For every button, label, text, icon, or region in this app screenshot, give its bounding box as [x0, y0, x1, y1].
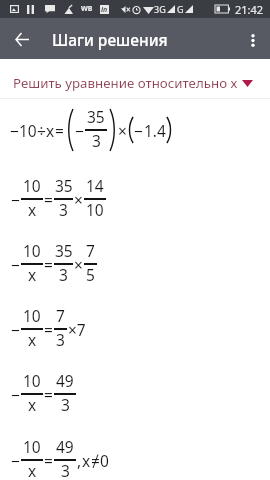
staticText: 7 [86, 240, 95, 260]
staticText: x [28, 394, 37, 414]
staticText: x [28, 264, 37, 284]
staticText: − [11, 254, 20, 275]
staticText: 10 [23, 175, 41, 195]
staticText: ÷ [37, 120, 46, 141]
staticText: = [44, 189, 53, 210]
button[interactable]: More options [236, 18, 270, 59]
staticText: − [11, 189, 20, 210]
staticText: 10 [86, 199, 104, 219]
staticText: x [28, 460, 37, 480]
staticText: 35 [87, 106, 105, 126]
staticText: 10 [19, 120, 37, 141]
staticText: − [75, 120, 84, 141]
staticText: 10 [23, 240, 41, 260]
staticText: = [44, 254, 53, 275]
staticText: G [177, 3, 184, 15]
staticText: 7 [56, 305, 65, 325]
staticText: × [74, 254, 83, 275]
button[interactable]: Решить уравнение относительно х [0, 59, 270, 98]
staticText: ≠ [91, 450, 100, 471]
staticText: x [46, 120, 55, 141]
staticText: x [28, 199, 37, 219]
staticText: x [82, 450, 91, 471]
staticText: 14 [86, 175, 104, 195]
staticText: = [55, 120, 64, 141]
staticText: − [134, 120, 143, 141]
staticText: 35 [55, 240, 73, 260]
staticText: , [77, 450, 82, 471]
staticText: 3 [61, 460, 70, 480]
staticText: 10 [23, 436, 41, 456]
staticText: − [10, 120, 19, 141]
staticText: × [74, 189, 83, 210]
staticText: 0 [100, 450, 109, 471]
staticText: 1.4 [144, 120, 166, 141]
staticText: 49 [56, 436, 74, 456]
staticText: = [44, 450, 53, 471]
staticText: Решить уравнение относительно х [13, 74, 238, 92]
staticText: × [118, 120, 127, 141]
staticText: WB [81, 4, 93, 14]
staticText: 10 [23, 305, 41, 325]
staticText: − [11, 319, 20, 340]
staticText: = [44, 384, 53, 405]
staticText: in [101, 5, 108, 14]
staticText: 35 [55, 175, 73, 195]
staticText: x [28, 329, 37, 349]
staticText: Шаги решения [52, 29, 168, 50]
staticText: 3 [59, 199, 68, 219]
staticText: 3 [59, 264, 68, 284]
staticText: − [11, 450, 20, 471]
staticText: = [44, 319, 53, 340]
staticText: 10 [23, 370, 41, 390]
staticText: 5 [86, 264, 95, 284]
staticText: ×7 [68, 319, 86, 340]
staticText: 21:42 [235, 2, 264, 17]
staticText: 3 [92, 130, 101, 150]
button[interactable]: Back [0, 18, 40, 59]
staticText: − [11, 384, 20, 405]
staticText: 3 [56, 329, 65, 349]
staticText: 3G [154, 3, 166, 15]
staticText: 3 [61, 394, 70, 414]
staticText: 49 [56, 370, 74, 390]
